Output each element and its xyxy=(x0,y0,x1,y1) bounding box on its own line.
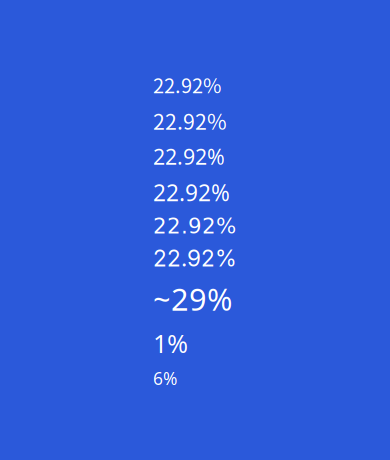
staticText: ~29% xyxy=(153,278,232,320)
staticText: 22.92% xyxy=(153,214,236,239)
staticText: 22.92% xyxy=(153,245,237,272)
staticText: 1% xyxy=(153,326,188,360)
staticText: 22.92% xyxy=(153,177,230,208)
staticText: 22.92% xyxy=(153,70,221,99)
staticText: 6% xyxy=(153,366,177,390)
staticText: 22.92% xyxy=(153,105,227,136)
staticText: 22.92% xyxy=(153,142,225,171)
